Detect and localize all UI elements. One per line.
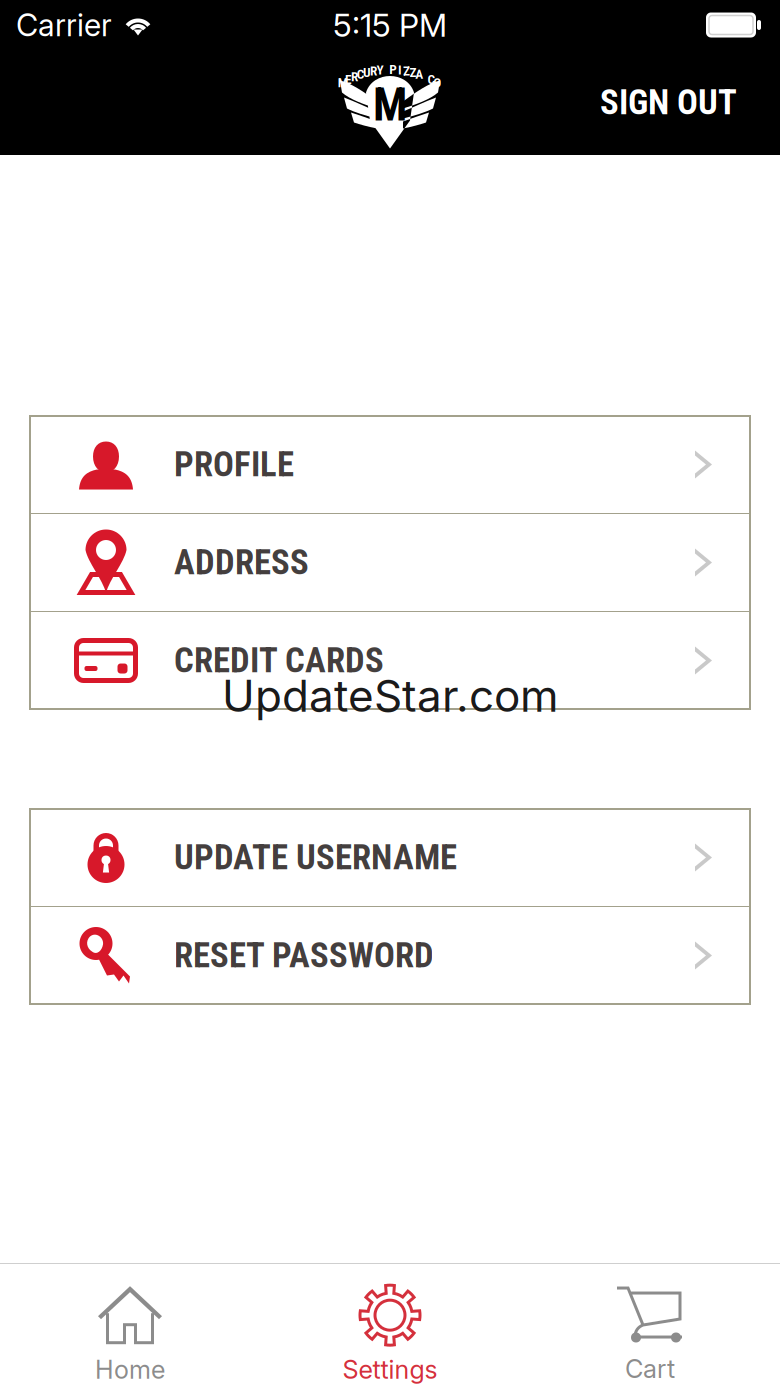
staticText: RESET PASSWORD <box>174 935 434 976</box>
button[interactable]: PROFILE <box>30 416 750 513</box>
staticText: CREDIT CARDS <box>174 640 384 681</box>
staticText: P <box>389 62 397 77</box>
staticText: E <box>345 72 352 87</box>
staticText: PROFILE <box>174 444 294 485</box>
staticText: R <box>351 69 358 84</box>
staticText: C <box>427 72 435 87</box>
staticText: M <box>338 75 348 90</box>
staticText: M <box>373 78 407 132</box>
button[interactable]: CREDIT CARDS <box>30 612 750 709</box>
staticText: I <box>398 62 402 78</box>
staticText: Home <box>95 1354 165 1385</box>
staticText: Settings <box>342 1354 437 1385</box>
staticText: UPDATE USERNAME <box>174 837 457 878</box>
button[interactable]: SIGN OUT <box>584 68 753 137</box>
button[interactable]: Home <box>0 1264 260 1387</box>
button[interactable]: Cart <box>520 1264 780 1387</box>
staticText: UpdateStar.com <box>222 669 559 722</box>
staticText: U <box>363 65 371 80</box>
button[interactable]: Settings <box>260 1264 520 1387</box>
staticText: ADDRESS <box>174 542 309 583</box>
staticText: Carrier <box>16 6 112 43</box>
staticText: A <box>415 66 423 82</box>
staticText: R <box>370 63 377 79</box>
staticText: Y <box>377 62 384 78</box>
staticText: Cart <box>625 1353 675 1384</box>
button[interactable]: RESET PASSWORD <box>30 907 750 1004</box>
button[interactable]: ADDRESS <box>30 514 750 611</box>
staticText: Z <box>403 63 410 79</box>
staticText: O <box>433 75 441 90</box>
staticText <box>385 62 388 77</box>
staticText: SIGN OUT <box>600 82 737 123</box>
staticText: 5:15 PM <box>333 6 447 44</box>
staticText: Z <box>409 65 416 80</box>
button[interactable]: UPDATE USERNAME <box>30 809 750 906</box>
staticText: C <box>357 66 365 82</box>
